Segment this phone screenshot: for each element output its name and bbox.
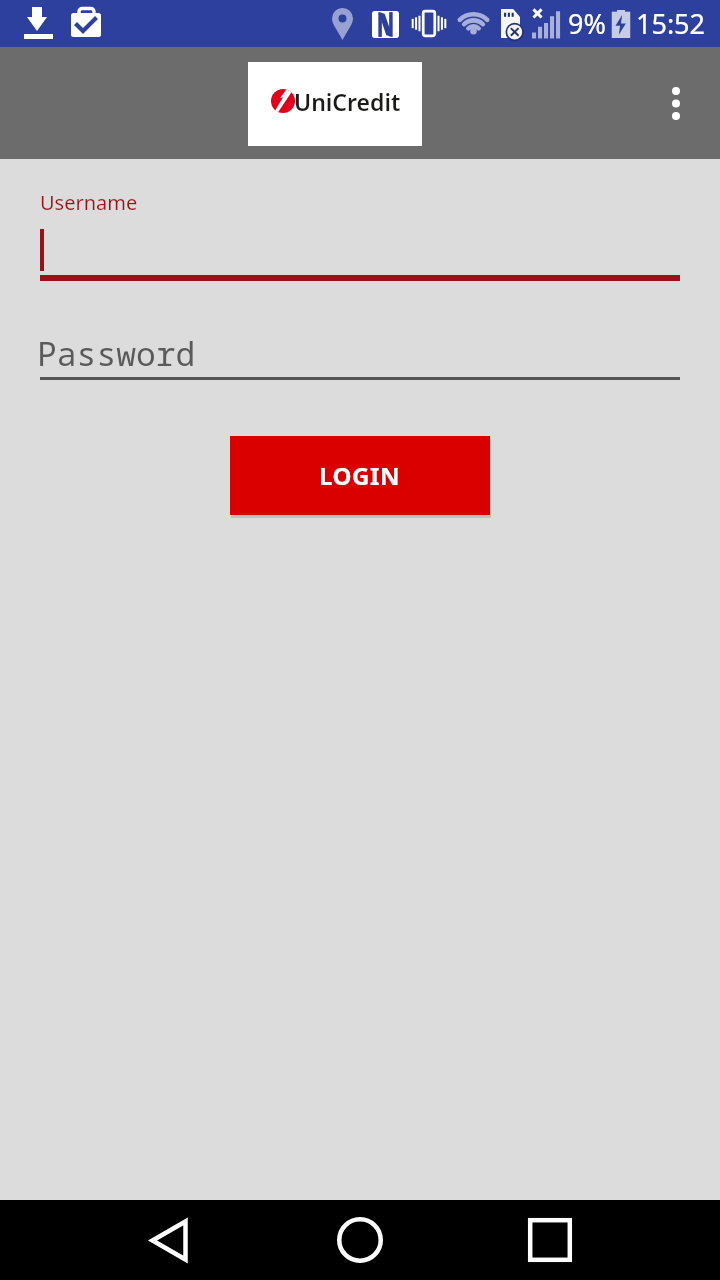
button[interactable]: Home bbox=[320, 1200, 400, 1280]
button[interactable]: Recents bbox=[510, 1200, 590, 1280]
staticText: 15:52 bbox=[636, 5, 706, 42]
button[interactable]: Back bbox=[129, 1200, 209, 1280]
button[interactable]: Password bbox=[40, 320, 680, 380]
staticText: Password bbox=[37, 331, 196, 376]
staticText: UniCredit bbox=[294, 86, 401, 117]
staticText: 9% bbox=[568, 5, 606, 42]
staticText: Username bbox=[40, 189, 138, 216]
button[interactable]: Username bbox=[40, 182, 680, 281]
button[interactable]: LOGIN bbox=[230, 436, 490, 515]
staticText: LOGIN bbox=[319, 459, 401, 492]
button[interactable]: More options bbox=[644, 71, 708, 135]
